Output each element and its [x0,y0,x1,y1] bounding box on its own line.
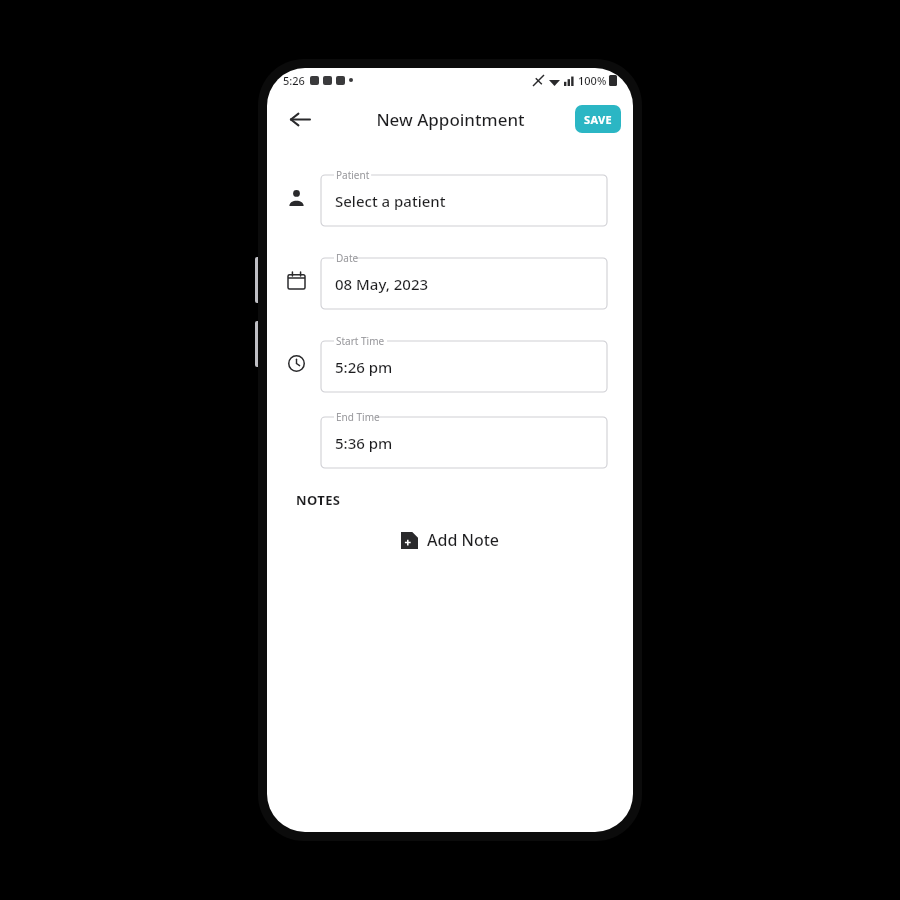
button[interactable]: Patient [321,168,607,226]
staticText: 08 May, 2023 [335,274,429,294]
button[interactable]: Date [321,251,607,309]
staticText: Select a patient [335,191,446,211]
staticText: NOTES [296,491,341,509]
staticText: SAVE [584,112,613,127]
staticText: Date [336,251,359,265]
button[interactable]: Start Time [321,334,607,392]
staticText: Add Note [427,529,499,551]
staticText: Patient [336,168,370,182]
button[interactable]: SAVE [575,105,621,133]
staticText: 5:36 pm [335,433,393,453]
staticText: New Appointment [376,108,525,131]
staticText: End Time [336,410,380,424]
button[interactable]: End Time [321,410,607,468]
button[interactable]: Add Note [393,525,507,555]
staticText: 100% [578,73,607,88]
staticText: 5:26 [283,73,305,88]
staticText: Start Time [336,334,385,348]
button[interactable]: Back [279,99,319,139]
staticText: 5:26 pm [335,357,393,377]
